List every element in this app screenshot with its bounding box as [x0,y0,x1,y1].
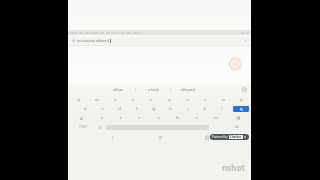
button[interactable]: f [128,105,145,113]
staticText: l [221,106,223,112]
button[interactable]: k [196,105,213,113]
button[interactable]: l [213,105,230,113]
staticText: r [132,97,134,103]
staticText: nshot [222,162,245,173]
staticText: v [157,115,160,121]
staticText: i [204,97,206,103]
button[interactable]: ?123 [69,123,95,131]
button[interactable]: r [124,96,142,104]
staticText: ?123 [79,125,86,129]
button[interactable]: Recent apps [203,133,211,141]
button[interactable]: y [160,96,178,104]
staticText: b [176,115,179,121]
staticText: Powered by [212,135,228,139]
button[interactable]: e [106,96,124,104]
button[interactable]: t [142,96,160,104]
staticText: m [214,115,218,121]
button[interactable]: c [130,114,149,122]
button[interactable]: u [178,96,196,104]
button[interactable]: a [77,105,94,113]
button[interactable]: Back [108,133,116,141]
button[interactable]: d [111,105,128,113]
button[interactable]: q [69,96,88,104]
staticText: d [118,106,121,112]
staticText: Go [235,125,240,129]
button[interactable]: g [145,105,162,113]
button[interactable]: x [111,114,130,122]
button[interactable]: Search [233,106,249,112]
button[interactable]: j [179,105,196,113]
other: Clear [244,39,247,42]
button[interactable]: Backspace [225,114,250,122]
staticText: z [101,115,103,121]
button[interactable]: Keyboard settings [242,87,247,92]
staticText: allow [113,87,123,92]
button[interactable]: o [214,96,232,104]
staticText: u [186,97,189,103]
staticText: Chatbot [230,135,242,139]
staticText: allowed [181,87,195,92]
button[interactable]: w [88,96,106,104]
staticText: p [240,97,243,103]
staticText: w [95,97,99,103]
button[interactable]: Emoji [95,123,105,131]
button[interactable]: allowed [171,85,205,94]
staticText: t [150,97,152,103]
button[interactable]: a look [136,85,170,94]
button[interactable]: m [206,114,225,122]
button[interactable]: n [187,114,206,122]
staticText: a [84,106,87,112]
button[interactable]: z [93,114,111,122]
staticText: ai [244,135,247,139]
staticText: y [168,97,171,103]
staticText: a look [148,87,159,92]
button[interactable]: p [232,96,250,104]
button[interactable]: Site information [70,37,249,44]
staticText: x [119,115,122,121]
button[interactable]: Shift [69,114,93,122]
button[interactable]: allow [101,85,135,94]
button[interactable]: h [162,105,179,113]
button[interactable]: Home [156,133,164,141]
staticText: o [222,97,225,103]
staticText: c [138,115,141,121]
button[interactable]: Go [225,123,250,131]
staticText: n [195,115,198,121]
button[interactable]: Powered by [210,134,249,140]
button[interactable]: s [94,105,111,113]
staticText: j [187,106,189,112]
staticText: e [114,97,117,103]
staticText: no camera allowed [77,38,109,43]
other: Site information [72,39,75,42]
button[interactable]: i [196,96,214,104]
button[interactable]: v [149,114,168,122]
staticText: h [169,106,172,112]
staticText: f [136,106,138,112]
staticText: s [101,106,104,112]
staticText: g [152,106,155,112]
staticText: . [217,124,219,130]
staticText: k [203,106,206,112]
staticText: q [77,97,80,103]
button[interactable]: b [168,114,187,122]
